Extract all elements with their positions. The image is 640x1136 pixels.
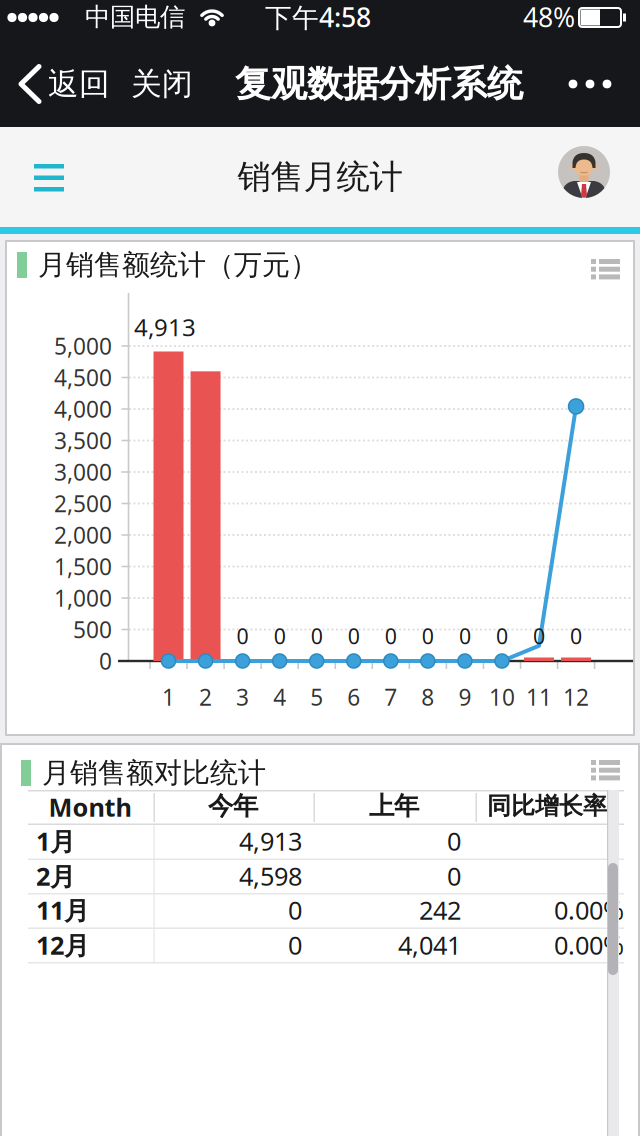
staticText: 0.00% [554, 928, 624, 962]
staticText: 2,000 [54, 520, 112, 550]
staticText: 0 [99, 646, 112, 676]
staticText: 0 [570, 622, 582, 650]
staticText: 4,041 [398, 928, 461, 962]
staticText: 4 [273, 682, 286, 712]
staticText: 12月 [36, 928, 89, 962]
staticText: 11 [526, 682, 552, 712]
staticText: 0 [274, 622, 286, 650]
staticText: 0 [385, 622, 397, 650]
staticText: 0 [533, 622, 545, 650]
button[interactable]: 返回 [17, 64, 117, 104]
staticText: 4,598 [239, 859, 302, 893]
staticText: 月销售额对比统计 [42, 756, 266, 790]
staticText: 0 [288, 928, 302, 962]
staticText: 3,500 [54, 425, 112, 455]
staticText: 2月 [36, 859, 75, 893]
staticText: 0 [447, 859, 461, 893]
staticText: 8 [421, 682, 434, 712]
staticText: 1,500 [54, 551, 112, 581]
staticText: 7 [384, 682, 397, 712]
staticText: 500 [73, 614, 112, 644]
staticText: 关闭 [131, 65, 193, 103]
staticText: 1 [162, 682, 175, 712]
staticText: 下午4:58 [265, 0, 371, 35]
button[interactable]: 用户 [558, 146, 610, 198]
staticText: 2,500 [54, 488, 112, 518]
staticText: 1,000 [54, 583, 112, 613]
staticText: 9 [458, 682, 471, 712]
staticText: 4,913 [239, 824, 302, 858]
button[interactable]: 表格菜单 [591, 760, 620, 780]
staticText: 中国电信 [85, 1, 185, 32]
staticText: 0 [459, 622, 471, 650]
staticText: 6 [347, 682, 360, 712]
staticText: 月销售额统计（万元） [38, 248, 318, 282]
staticText: 1月 [36, 824, 75, 858]
staticText: 0 [288, 893, 302, 927]
staticText: 同比增长率 [487, 791, 607, 821]
staticText: 销售月统计 [237, 156, 402, 197]
staticText: 5 [310, 682, 323, 712]
staticText: 今年 [208, 790, 258, 821]
staticText: 0.00% [554, 893, 624, 927]
staticText: 5,000 [54, 331, 112, 361]
staticText: 3 [236, 682, 249, 712]
button[interactable]: 图表菜单 [591, 259, 620, 279]
button[interactable]: 关闭 [122, 64, 202, 104]
staticText: 复观数据分析系统 [235, 62, 523, 106]
staticText: 0 [237, 622, 249, 650]
staticText: 0 [447, 824, 461, 858]
staticText: 返回 [48, 65, 110, 103]
staticText: 上年 [369, 790, 419, 821]
staticText: Month [48, 790, 131, 824]
staticText: 0 [496, 622, 508, 650]
staticText: 11月 [36, 893, 89, 927]
staticText: 3,000 [54, 457, 112, 487]
staticText: 242 [419, 893, 461, 927]
staticText: 0 [348, 622, 360, 650]
staticText: 10 [489, 682, 515, 712]
staticText: 0 [422, 622, 434, 650]
button[interactable]: 更多 [565, 64, 615, 104]
staticText: 2 [199, 682, 212, 712]
staticText: 48% [523, 0, 575, 35]
staticText: 4,000 [54, 394, 112, 424]
staticText: 12 [563, 682, 589, 712]
staticText: 4,500 [54, 362, 112, 392]
staticText: 0 [311, 622, 323, 650]
button[interactable]: 菜单 [27, 157, 71, 197]
staticText: 4,913 [134, 311, 196, 343]
